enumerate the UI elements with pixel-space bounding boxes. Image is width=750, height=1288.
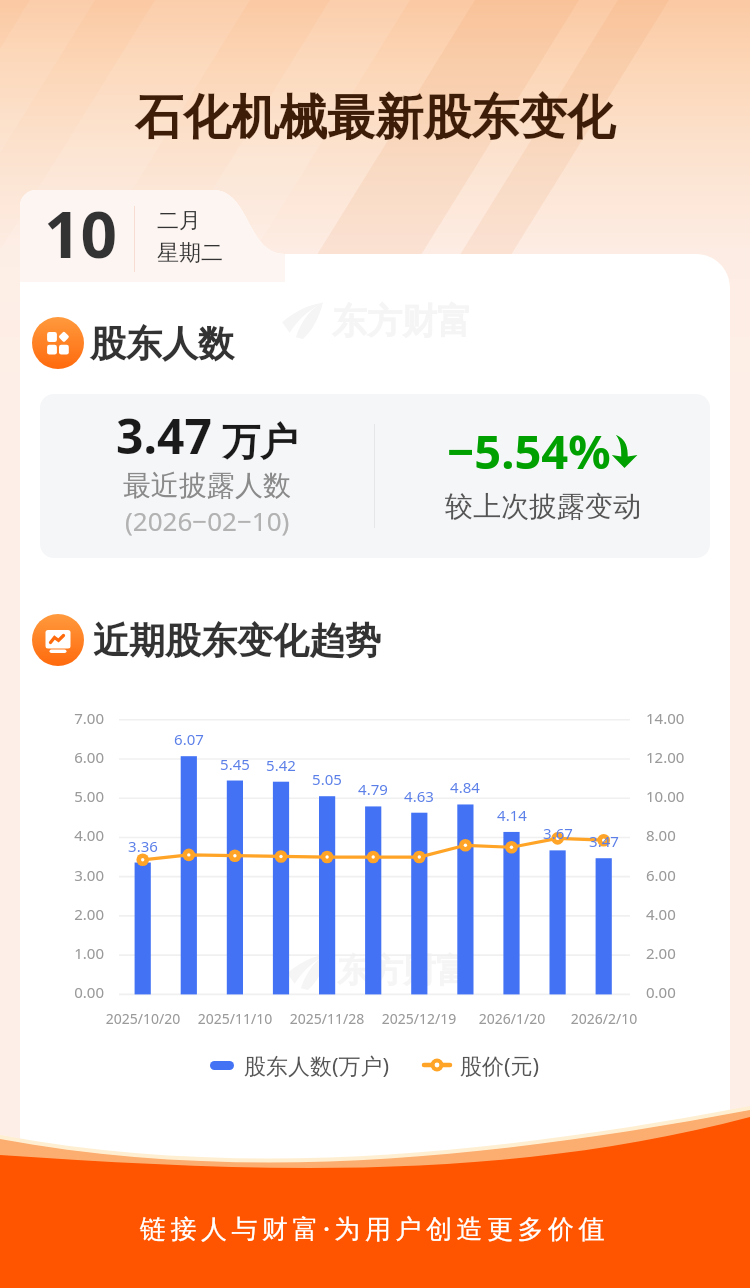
staticText: 10 <box>44 190 118 277</box>
staticText: −5.54% <box>447 419 611 483</box>
staticText: 2026/2/10 <box>544 1009 664 1028</box>
staticText: 较上次披露变动 <box>445 489 641 524</box>
staticText: 股东人数(万户) <box>244 1050 390 1080</box>
staticText: 10.00 <box>646 786 716 806</box>
staticText: 4.14 <box>482 805 542 825</box>
staticText: 2.00 <box>40 904 104 924</box>
staticText: 6.07 <box>159 729 219 749</box>
staticText: 2025/12/19 <box>359 1009 479 1028</box>
staticText: 东方财富 <box>332 299 472 343</box>
other: 近期股东变化趋势 <box>32 614 84 666</box>
staticText: 二月 <box>157 207 201 235</box>
staticText: 2026/1/20 <box>452 1009 572 1028</box>
staticText: 3.00 <box>40 865 104 885</box>
staticText: 近期股东变化趋势 <box>93 618 381 663</box>
staticText: 4.00 <box>646 904 716 924</box>
staticText: 3.67 <box>528 823 588 843</box>
staticText: 东方财富 <box>337 950 469 992</box>
staticText: 2025/10/20 <box>83 1009 203 1028</box>
staticText: 6.00 <box>40 747 104 767</box>
staticText: 万户 <box>222 418 298 466</box>
staticText: 4.63 <box>389 786 449 806</box>
staticText: 4.00 <box>40 825 104 845</box>
staticText: 1.00 <box>40 943 104 963</box>
staticText: 股价(元) <box>460 1050 540 1080</box>
staticText: 0.00 <box>646 982 716 1002</box>
button[interactable]: 近期股东变化趋势 <box>32 614 381 666</box>
staticText: (2026−02−10) <box>125 503 290 538</box>
staticText: 0.00 <box>40 982 104 1002</box>
staticText: 4.79 <box>343 779 403 799</box>
button[interactable]: 股东人数 <box>32 317 234 369</box>
staticText: 5.05 <box>297 769 357 789</box>
staticText: 链接人与财富·为用户创造更多价值 <box>140 1210 610 1246</box>
staticText: 8.00 <box>646 825 716 845</box>
staticText: 5.00 <box>40 786 104 806</box>
staticText: 5.42 <box>251 755 311 775</box>
staticText: 7.00 <box>40 708 104 728</box>
staticText: 2025/11/28 <box>267 1009 387 1028</box>
staticText: 3.47 <box>574 831 634 851</box>
staticText: 12.00 <box>646 747 716 767</box>
staticText: 6.00 <box>646 865 716 885</box>
staticText: 3.36 <box>113 836 173 856</box>
staticText: 石化机械最新股东变化 <box>135 88 615 148</box>
other: 股东人数 <box>32 317 84 369</box>
staticText: 2025/11/10 <box>175 1009 295 1028</box>
staticText: 4.84 <box>435 777 495 797</box>
staticText: 2.00 <box>646 943 716 963</box>
staticText: 股东人数 <box>90 321 234 366</box>
staticText: 5.45 <box>205 754 265 774</box>
staticText: 3.47 <box>116 403 212 468</box>
staticText: 星期二 <box>157 239 223 267</box>
staticText: 14.00 <box>646 708 716 728</box>
staticText: 最近披露人数 <box>123 468 291 503</box>
